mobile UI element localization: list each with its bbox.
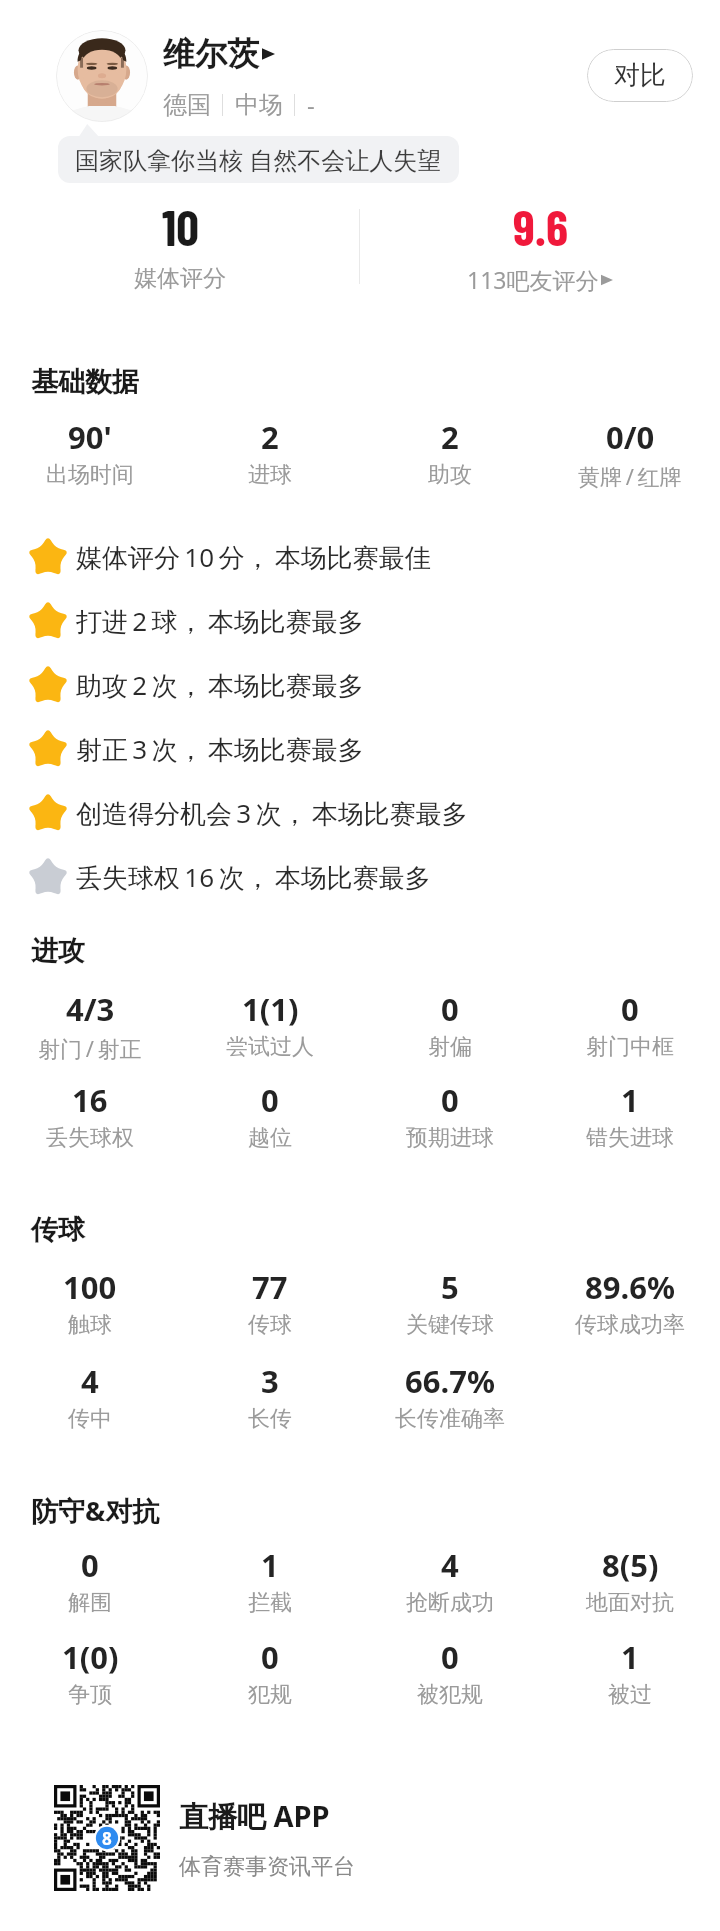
staticText: 长传 xyxy=(248,1405,292,1433)
staticText: 4/3 xyxy=(66,988,115,1030)
staticText: 黄牌 / 红牌 xyxy=(578,461,682,491)
staticText: 0 xyxy=(81,1544,99,1586)
staticText: 进球 xyxy=(248,461,292,489)
staticText: 被犯规 xyxy=(417,1681,483,1709)
staticText: 113吧友评分 xyxy=(467,264,599,295)
staticText: 体育赛事资讯平台 xyxy=(179,1853,355,1881)
staticText: 触球 xyxy=(68,1311,112,1339)
button[interactable]: 射正 3 次， 本场比赛最多 xyxy=(0,717,720,781)
staticText: 拦截 xyxy=(248,1589,292,1617)
staticText: 4 xyxy=(81,1360,99,1402)
staticText: 8 xyxy=(102,1827,112,1850)
staticText: 被过 xyxy=(608,1681,652,1709)
button[interactable]: QR code xyxy=(54,1785,160,1891)
staticText: 0 xyxy=(261,1636,279,1678)
staticText: 0 xyxy=(441,1079,459,1121)
staticText: 10 xyxy=(162,196,199,256)
staticText: 射正 3 次， 本场比赛最多 xyxy=(76,731,364,767)
staticText: 8(5) xyxy=(602,1544,659,1586)
staticText: 防守&对抗 xyxy=(31,1492,160,1529)
staticText: 5 xyxy=(441,1266,459,1308)
button[interactable]: Player avatar xyxy=(56,30,148,122)
staticText: 传球 xyxy=(31,1213,85,1247)
staticText: 德国 xyxy=(163,90,211,120)
staticText: 90' xyxy=(68,416,112,458)
staticText: 进攻 xyxy=(31,934,85,968)
staticText: 77 xyxy=(252,1266,288,1308)
staticText: 关键传球 xyxy=(406,1311,494,1339)
staticText: 射偏 xyxy=(428,1033,472,1061)
staticText: 0 xyxy=(441,1636,459,1678)
staticText: 对比 xyxy=(614,59,666,92)
staticText: 射门中框 xyxy=(586,1033,674,1061)
staticText: 0 xyxy=(261,1079,279,1121)
staticText: 犯规 xyxy=(248,1681,292,1709)
staticText: 0 xyxy=(441,988,459,1030)
staticText: 0/0 xyxy=(606,416,655,458)
staticText: 1(1) xyxy=(242,988,299,1030)
staticText: 解围 xyxy=(68,1589,112,1617)
staticText: 1 xyxy=(621,1079,639,1121)
staticText: 打进 2 球， 本场比赛最多 xyxy=(76,603,364,639)
staticText: 长传准确率 xyxy=(395,1405,505,1433)
button[interactable]: 维尔茨 xyxy=(163,34,275,74)
staticText: 地面对抗 xyxy=(586,1589,674,1617)
button[interactable]: 媒体评分 10 分， 本场比赛最佳 xyxy=(0,525,720,589)
button[interactable]: 助攻 2 次， 本场比赛最多 xyxy=(0,653,720,717)
staticText: 丢失球权 16 次， 本场比赛最多 xyxy=(76,859,431,895)
staticText: 中场 xyxy=(235,90,283,120)
staticText: 传球 xyxy=(248,1311,292,1339)
staticText: 出场时间 xyxy=(46,461,134,489)
staticText: 媒体评分 xyxy=(134,264,226,293)
staticText: 89.6% xyxy=(585,1266,675,1308)
staticText: 丢失球权 xyxy=(46,1124,134,1152)
staticText: 创造得分机会 3 次， 本场比赛最多 xyxy=(76,795,468,831)
staticText: 基础数据 xyxy=(31,365,139,399)
button[interactable]: 创造得分机会 3 次， 本场比赛最多 xyxy=(0,781,720,845)
staticText: 1 xyxy=(621,1636,639,1678)
staticText: 16 xyxy=(72,1079,108,1121)
staticText: 0 xyxy=(621,988,639,1030)
button[interactable]: 9.6 xyxy=(360,196,720,295)
staticText: 1 xyxy=(261,1544,279,1586)
staticText: 4 xyxy=(441,1544,459,1586)
staticText: 助攻 2 次， 本场比赛最多 xyxy=(76,667,364,703)
staticText: 尝试过人 xyxy=(226,1033,314,1061)
staticText: 抢断成功 xyxy=(406,1589,494,1617)
staticText: 媒体评分 10 分， 本场比赛最佳 xyxy=(76,539,431,575)
staticText: 维尔茨 xyxy=(163,34,259,74)
button[interactable]: 对比 xyxy=(587,49,693,102)
staticText: - xyxy=(307,88,315,121)
staticText: 传中 xyxy=(68,1405,112,1433)
staticText: 直播吧 APP xyxy=(179,1796,330,1836)
staticText: 1(0) xyxy=(62,1636,119,1678)
staticText: 2 xyxy=(441,416,459,458)
staticText: 2 xyxy=(261,416,279,458)
staticText: 助攻 xyxy=(428,461,472,489)
staticText: 传球成功率 xyxy=(575,1311,685,1339)
button[interactable]: 打进 2 球， 本场比赛最多 xyxy=(0,589,720,653)
staticText: 预期进球 xyxy=(406,1124,494,1152)
button[interactable]: 10 xyxy=(0,196,360,293)
staticText: 9.6 xyxy=(513,196,568,256)
staticText: 66.7% xyxy=(405,1360,495,1402)
staticText: 争顶 xyxy=(68,1681,112,1709)
staticText: 3 xyxy=(261,1360,279,1402)
staticText: 国家队拿你当核 自然不会让人失望 xyxy=(75,143,442,176)
staticText: 射门 / 射正 xyxy=(38,1033,142,1063)
button[interactable]: 国家队拿你当核 自然不会让人失望 xyxy=(58,136,459,183)
button[interactable]: 丢失球权 16 次， 本场比赛最多 xyxy=(0,845,720,909)
staticText: 越位 xyxy=(248,1124,292,1152)
staticText: 错失进球 xyxy=(586,1124,674,1152)
staticText: 100 xyxy=(63,1266,117,1308)
